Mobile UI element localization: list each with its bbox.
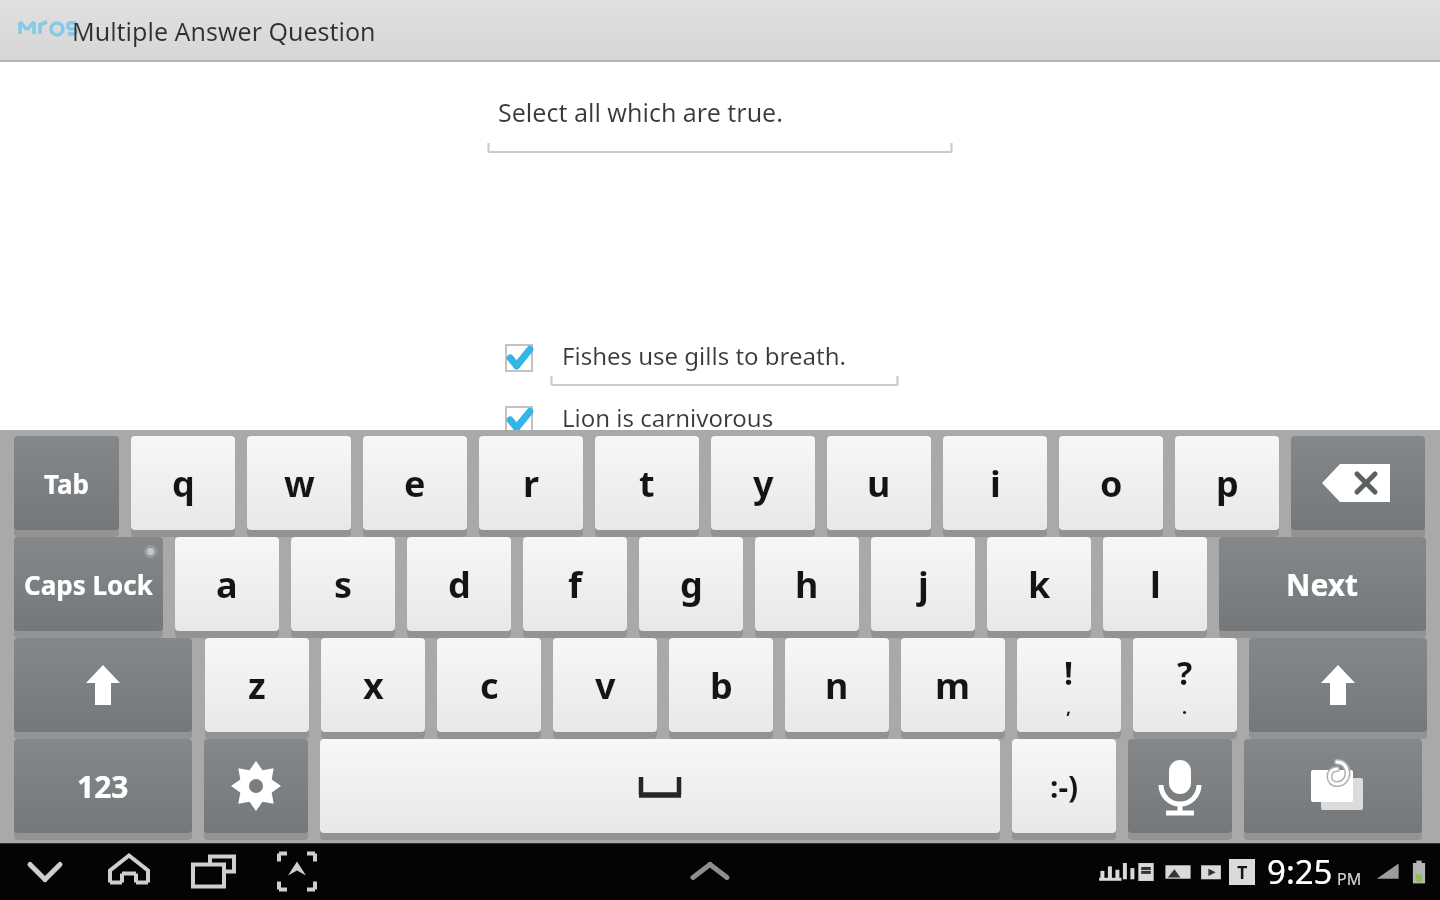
button[interactable]: w: [247, 435, 351, 535]
button[interactable]: r: [479, 435, 583, 535]
staticText: t: [639, 459, 655, 508]
staticText: a: [216, 560, 238, 609]
staticText: w: [284, 459, 315, 508]
staticText: h: [795, 560, 819, 609]
other: Checked: Fishes use gills to breath.: [502, 341, 536, 375]
button[interactable]: l: [1103, 536, 1207, 636]
staticText: j: [918, 560, 929, 609]
staticText: d: [448, 560, 471, 609]
button[interactable]: Home: [100, 843, 158, 900]
button[interactable]: Backspace: [1291, 435, 1425, 535]
button[interactable]: d: [407, 536, 511, 636]
button[interactable]: b: [669, 637, 773, 737]
staticText: r: [523, 459, 540, 508]
staticText: x: [363, 661, 384, 710]
button[interactable]: n: [785, 637, 889, 737]
button[interactable]: m: [901, 637, 1005, 737]
staticText: Fishes use gills to breath.: [562, 339, 846, 372]
staticText: l: [1150, 560, 1161, 609]
button[interactable]: Hide keyboard: [16, 843, 74, 900]
staticText: 123: [77, 766, 129, 807]
staticText: m: [935, 661, 971, 710]
button[interactable]: q: [131, 435, 235, 535]
button[interactable]: x: [321, 637, 425, 737]
staticText: u: [867, 459, 891, 508]
button[interactable]: Recent apps: [184, 843, 242, 900]
button[interactable]: !: [1017, 637, 1121, 737]
staticText: f: [568, 560, 582, 609]
staticText: Caps Lock: [24, 567, 153, 602]
staticText: Lion is carnivorous: [562, 401, 774, 434]
button[interactable]: o: [1059, 435, 1163, 535]
button[interactable]: Screenshot: [268, 843, 326, 900]
button[interactable]: k: [987, 536, 1091, 636]
staticText: e: [404, 459, 426, 508]
button[interactable]: a: [175, 536, 279, 636]
button[interactable]: Voice input: [1128, 738, 1232, 838]
button[interactable]: j: [871, 536, 975, 636]
button[interactable]: Shift: [1249, 637, 1427, 737]
button[interactable]: Checked: Fishes use gills to breath.: [502, 339, 899, 388]
button[interactable]: i: [943, 435, 1047, 535]
staticText: v: [595, 661, 616, 710]
button[interactable]: Expand: [681, 843, 739, 900]
staticText: q: [172, 459, 195, 508]
staticText: p: [1216, 459, 1239, 508]
button[interactable]: :-): [1012, 738, 1116, 838]
staticText: ,: [1066, 695, 1072, 720]
staticText: y: [753, 459, 774, 508]
button[interactable]: s: [291, 536, 395, 636]
staticText: Tab: [44, 466, 89, 501]
button[interactable]: 123: [14, 738, 192, 838]
button[interactable]: Shift: [14, 637, 192, 737]
staticText: b: [710, 661, 733, 710]
button[interactable]: Next: [1219, 536, 1426, 636]
button[interactable]: u: [827, 435, 931, 535]
staticText: z: [248, 661, 266, 710]
staticText: s: [334, 560, 353, 609]
other: Checked: Lion is carnivorous: [502, 403, 536, 437]
staticText: PM: [1337, 868, 1362, 890]
staticText: o: [1100, 459, 1123, 508]
staticText: n: [825, 661, 849, 710]
staticText: Next: [1286, 564, 1359, 605]
staticText: T: [1237, 860, 1248, 885]
button[interactable]: p: [1175, 435, 1279, 535]
button[interactable]: y: [711, 435, 815, 535]
staticText: Select all which are true.: [498, 95, 783, 129]
button[interactable]: e: [363, 435, 467, 535]
button[interactable]: Caps Lock: [14, 536, 163, 636]
button[interactable]: z: [205, 637, 309, 737]
staticText: :-): [1050, 766, 1079, 807]
staticText: 9:25: [1267, 849, 1333, 894]
staticText: i: [990, 459, 1001, 508]
staticText: ?: [1177, 651, 1193, 695]
button[interactable]: ?: [1133, 637, 1237, 737]
staticText: !: [1064, 651, 1074, 695]
button[interactable]: Checked: Lion is carnivorous: [502, 401, 899, 450]
staticText: Multiple Answer Question: [72, 14, 376, 48]
staticText: g: [680, 560, 703, 609]
button[interactable]: v: [553, 637, 657, 737]
button[interactable]: t: [595, 435, 699, 535]
button[interactable]: Space: [320, 738, 1000, 838]
staticText: .: [1182, 695, 1188, 720]
button[interactable]: Tab: [14, 435, 119, 535]
button[interactable]: c: [437, 637, 541, 737]
button[interactable]: Attach: [1244, 738, 1422, 838]
button[interactable]: Settings: [204, 738, 308, 838]
staticText: k: [1028, 560, 1051, 609]
button[interactable]: f: [523, 536, 627, 636]
staticText: c: [480, 661, 499, 710]
button[interactable]: g: [639, 536, 743, 636]
button[interactable]: h: [755, 536, 859, 636]
